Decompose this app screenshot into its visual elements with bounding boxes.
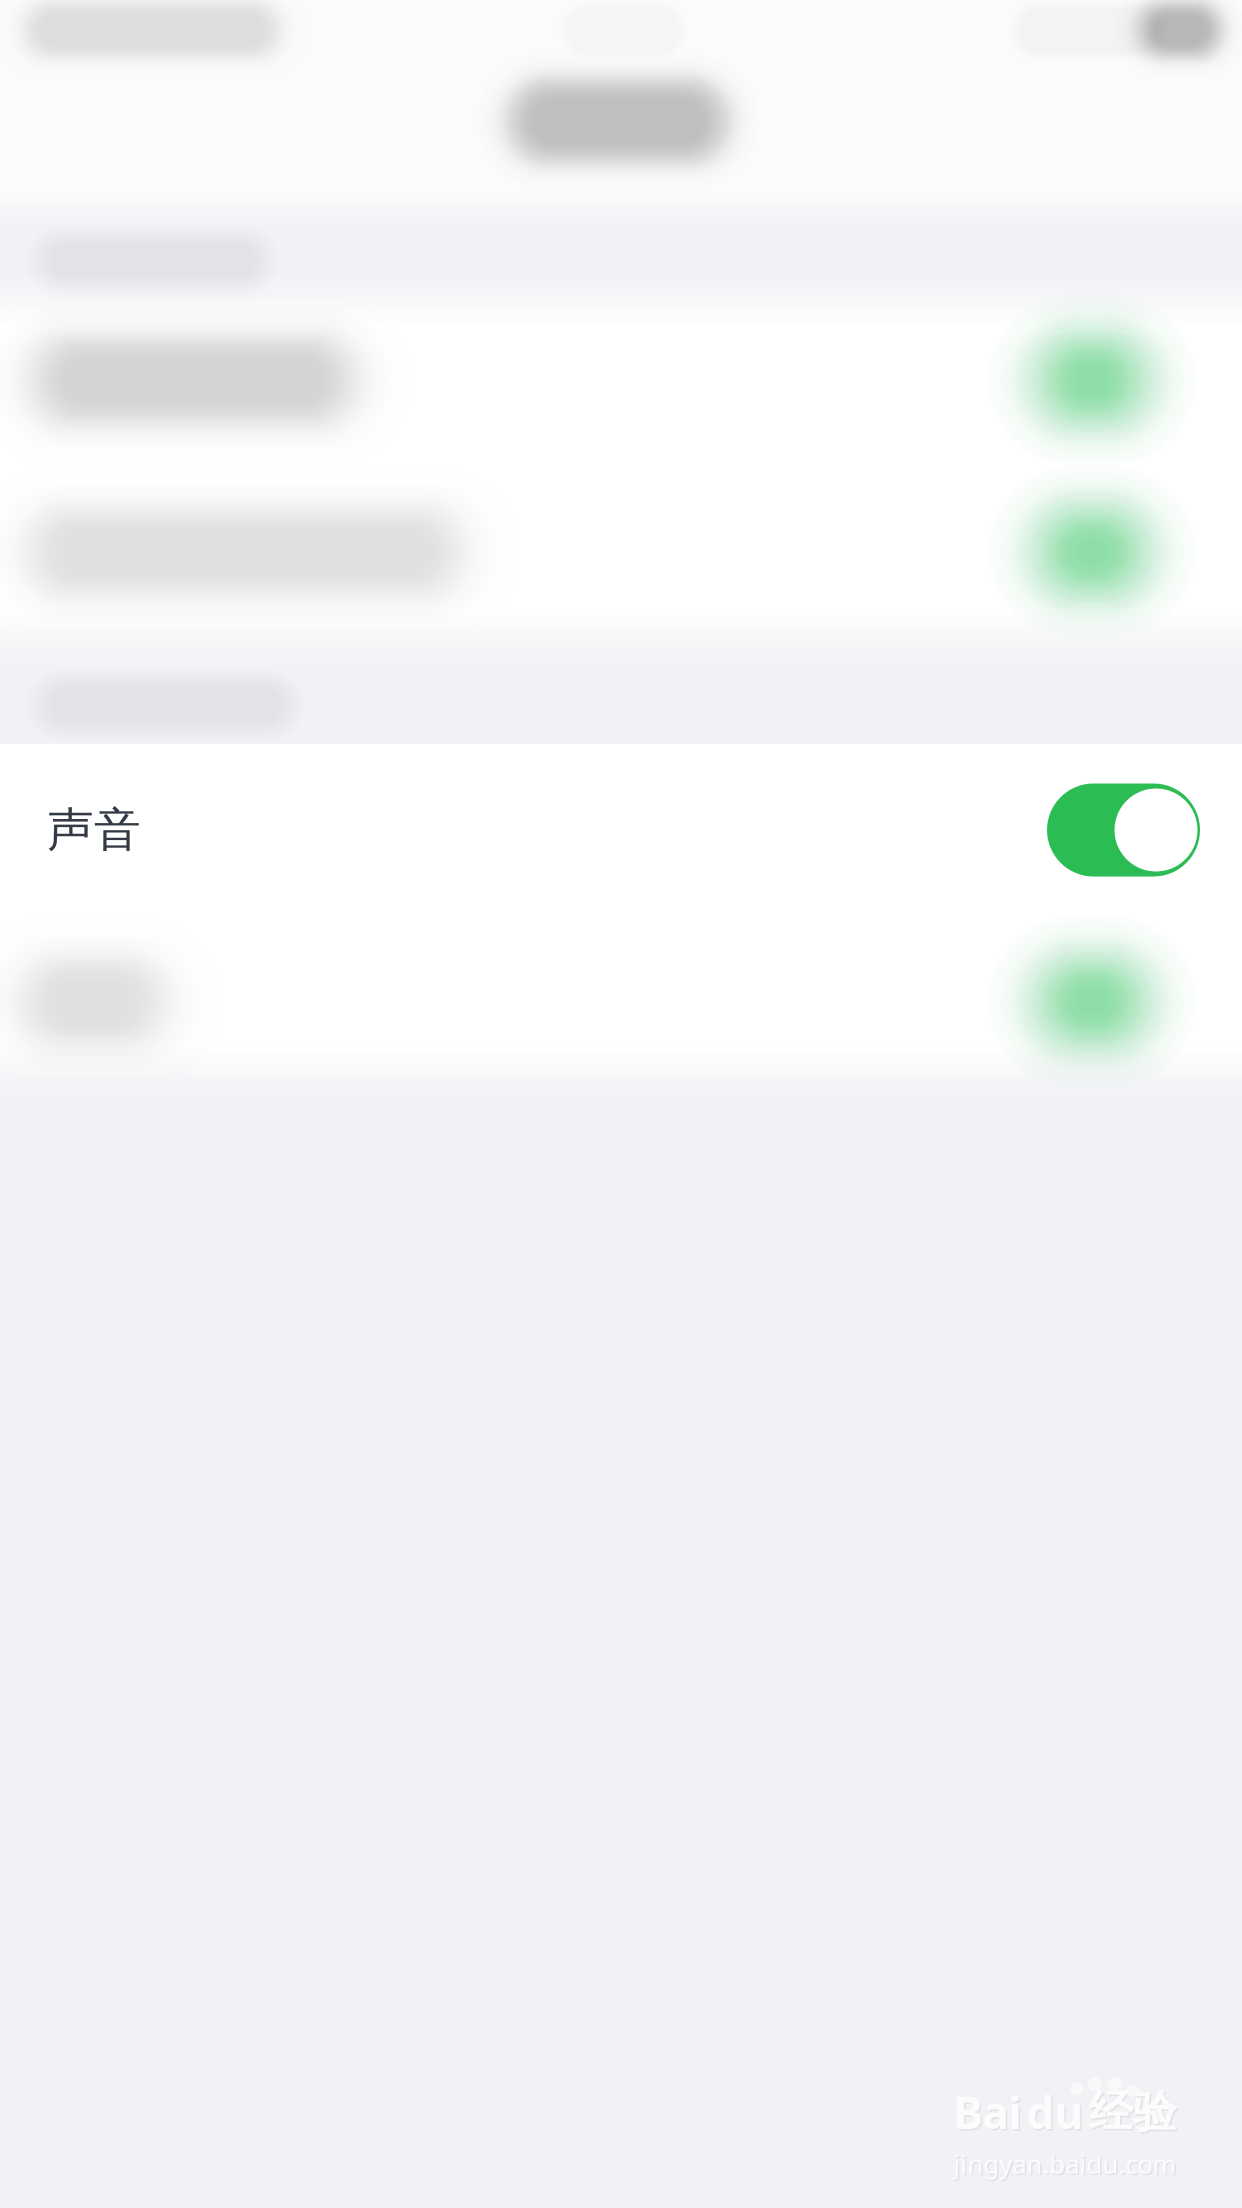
- staticText: jingyan.baidu.com: [955, 2149, 1178, 2182]
- button[interactable]: [0, 916, 1242, 1088]
- button[interactable]: 声音: [0, 744, 1242, 916]
- staticText: Bai: [955, 2084, 1023, 2143]
- button[interactable]: [0, 294, 1242, 466]
- staticText: du: [1028, 2084, 1085, 2143]
- button[interactable]: [0, 466, 1242, 638]
- staticText: 经验: [1088, 2085, 1176, 2139]
- staticText: 经验: [1090, 2086, 1178, 2140]
- staticText: Bai: [953, 2083, 1021, 2141]
- staticText: jingyan.baidu.com: [953, 2147, 1176, 2181]
- staticText: du: [1026, 2083, 1083, 2141]
- staticText: 声音: [47, 801, 141, 859]
